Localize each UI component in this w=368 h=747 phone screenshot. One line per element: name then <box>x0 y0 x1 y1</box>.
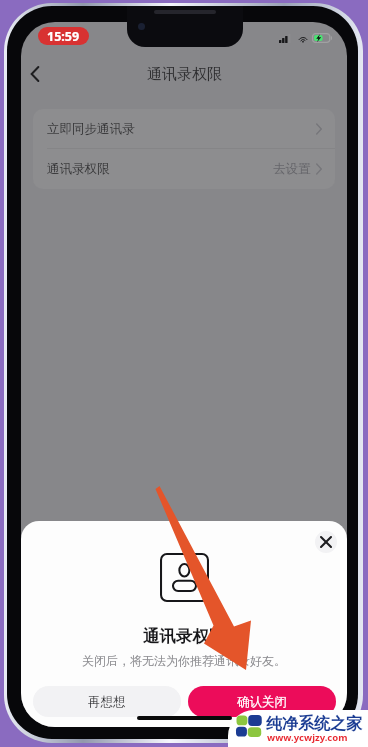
staticText: 通讯录权限 <box>147 65 222 84</box>
staticText: 通讯录权限 <box>143 626 226 647</box>
button[interactable]: 再想想 <box>33 686 181 717</box>
button[interactable]: 确认关闭 <box>188 686 336 717</box>
button[interactable]: 立即同步通讯录 <box>33 109 335 148</box>
staticText: 确认关闭 <box>237 694 287 710</box>
button[interactable]: Close <box>315 531 337 553</box>
staticText: 再想想 <box>88 694 126 710</box>
staticText: 去设置 <box>273 161 311 177</box>
button[interactable]: 通讯录权限 <box>33 149 335 188</box>
staticText: 15:59 <box>47 28 80 45</box>
staticText: 通讯录权限 <box>47 161 110 177</box>
staticText: 立即同步通讯录 <box>47 121 135 137</box>
staticText: 纯净系统之家 <box>266 714 362 734</box>
staticText: www.ycwjzy.com <box>267 731 348 744</box>
staticText: 关闭后，将无法为你推荐通讯录好友。 <box>82 653 286 668</box>
button[interactable]: Back <box>21 57 52 91</box>
